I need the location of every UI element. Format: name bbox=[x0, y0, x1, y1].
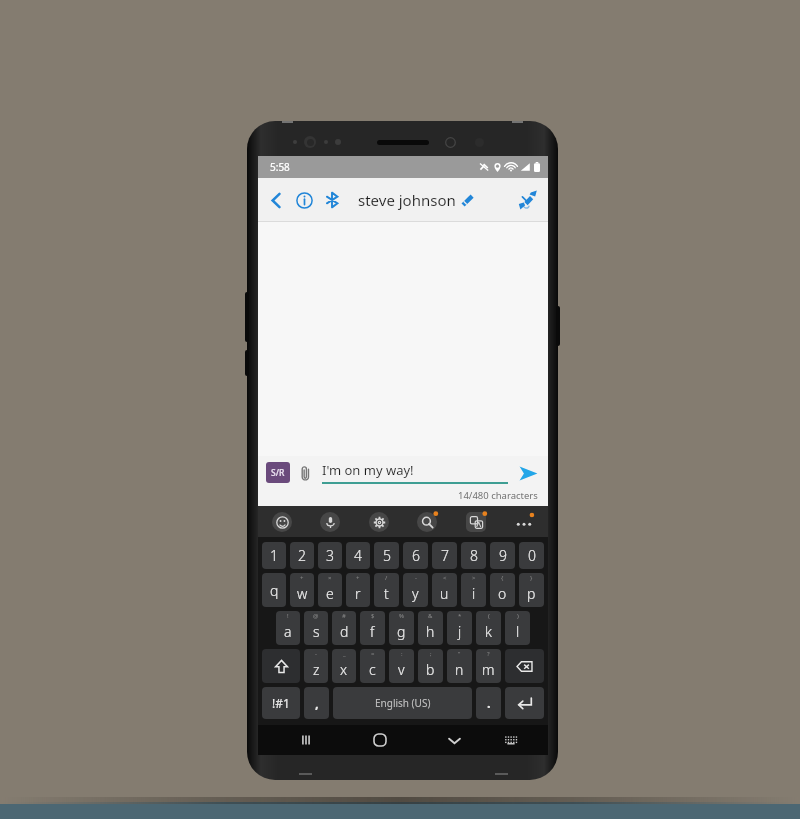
staticText: / bbox=[385, 574, 388, 582]
button[interactable]: Enter bbox=[505, 687, 544, 719]
button[interactable]: < bbox=[432, 573, 457, 607]
staticText: j bbox=[458, 622, 462, 641]
staticText: } bbox=[530, 574, 533, 582]
button[interactable]: × bbox=[318, 573, 342, 607]
button[interactable]: Emoji bbox=[271, 511, 293, 533]
button[interactable]: . bbox=[476, 687, 501, 719]
button[interactable]: ! bbox=[276, 611, 300, 645]
button[interactable]: & bbox=[418, 611, 443, 645]
staticText: * bbox=[458, 612, 462, 620]
staticText: q bbox=[270, 581, 279, 600]
button[interactable]: 1 bbox=[262, 542, 286, 569]
button[interactable]: , bbox=[304, 687, 329, 719]
button[interactable]: % bbox=[389, 611, 414, 645]
button[interactable]: 3 bbox=[318, 542, 342, 569]
button[interactable]: / bbox=[374, 573, 399, 607]
staticText: < bbox=[443, 574, 447, 582]
button[interactable]: ( bbox=[476, 611, 501, 645]
button[interactable]: 6 bbox=[403, 542, 428, 569]
staticText: 6 bbox=[412, 546, 420, 565]
staticText: 8 bbox=[470, 546, 478, 565]
staticText: t bbox=[384, 584, 389, 603]
button[interactable]: Recent apps bbox=[291, 725, 321, 755]
staticText: 2 bbox=[298, 546, 306, 565]
staticText: I'm on my way! bbox=[322, 461, 414, 479]
button[interactable]: Attach file bbox=[295, 463, 315, 483]
button[interactable]: Back bbox=[439, 725, 469, 755]
button[interactable]: Backspace bbox=[505, 649, 544, 683]
button[interactable]: English (US) bbox=[333, 687, 472, 719]
button[interactable]: 7 bbox=[432, 542, 457, 569]
staticText: + bbox=[300, 574, 304, 582]
button[interactable]: : bbox=[389, 649, 414, 683]
button[interactable]: Search bbox=[416, 511, 438, 533]
button[interactable]: 0 bbox=[519, 542, 544, 569]
button[interactable]: " bbox=[447, 649, 472, 683]
button[interactable]: Home bbox=[365, 725, 395, 755]
staticText: w bbox=[297, 584, 308, 603]
button[interactable]: ? bbox=[476, 649, 501, 683]
button[interactable]: Bluetooth bbox=[319, 187, 345, 213]
button[interactable]: !#1 bbox=[262, 687, 300, 719]
button[interactable]: { bbox=[490, 573, 515, 607]
staticText: × bbox=[328, 574, 332, 582]
staticText: o bbox=[498, 584, 507, 603]
button[interactable]: q bbox=[262, 573, 286, 607]
button[interactable]: 9 bbox=[490, 542, 515, 569]
staticText: r bbox=[355, 584, 361, 603]
button[interactable]: @ bbox=[304, 611, 328, 645]
staticText: ) bbox=[517, 612, 519, 620]
button[interactable]: _ bbox=[332, 649, 356, 683]
staticText: 3 bbox=[326, 546, 334, 565]
staticText: { bbox=[501, 574, 504, 582]
button[interactable]: Contact info bbox=[291, 187, 317, 213]
staticText: i bbox=[472, 584, 476, 603]
button[interactable]: S/R bbox=[266, 462, 290, 483]
staticText: x bbox=[340, 660, 348, 679]
staticText: k bbox=[485, 622, 492, 641]
button[interactable]: Translate bbox=[465, 511, 487, 533]
button[interactable]: Back bbox=[263, 187, 289, 213]
button[interactable]: Shift bbox=[262, 649, 300, 683]
button[interactable]: } bbox=[519, 573, 544, 607]
button[interactable]: * bbox=[447, 611, 472, 645]
button[interactable]: ; bbox=[418, 649, 443, 683]
button[interactable]: # bbox=[332, 611, 356, 645]
button[interactable]: 4 bbox=[346, 542, 370, 569]
staticText: b bbox=[426, 660, 435, 679]
button[interactable]: Keyboard settings bbox=[368, 511, 390, 533]
button[interactable]: + bbox=[290, 573, 314, 607]
staticText: & bbox=[428, 612, 433, 620]
staticText: % bbox=[399, 612, 404, 620]
staticText: 4 bbox=[354, 546, 362, 565]
button[interactable]: 2 bbox=[290, 542, 314, 569]
staticText: ; bbox=[430, 650, 432, 658]
button[interactable]: steve johnson bbox=[358, 178, 513, 222]
button[interactable]: Satellite messaging bbox=[513, 185, 543, 215]
staticText: m bbox=[482, 660, 495, 679]
staticText: @ bbox=[313, 612, 319, 620]
button[interactable]: $ bbox=[360, 611, 385, 645]
button[interactable]: Hide keyboard bbox=[496, 725, 526, 755]
button[interactable]: - bbox=[304, 649, 328, 683]
staticText: _ bbox=[343, 650, 346, 658]
button[interactable]: ) bbox=[505, 611, 530, 645]
button[interactable]: Voice input bbox=[319, 511, 341, 533]
button[interactable]: = bbox=[360, 649, 385, 683]
staticText: z bbox=[313, 660, 320, 679]
staticText: : bbox=[401, 650, 403, 658]
staticText: 1 bbox=[270, 546, 278, 565]
button[interactable]: - bbox=[403, 573, 428, 607]
button[interactable]: More options bbox=[513, 511, 535, 533]
staticText: ! bbox=[287, 612, 289, 620]
staticText: h bbox=[426, 622, 435, 641]
button[interactable]: + bbox=[346, 573, 370, 607]
staticText: steve johnson bbox=[358, 190, 456, 210]
button[interactable]: Send bbox=[515, 460, 541, 486]
staticText: a bbox=[284, 622, 292, 641]
button[interactable]: > bbox=[461, 573, 486, 607]
staticText: f bbox=[370, 622, 375, 641]
button[interactable]: 8 bbox=[461, 542, 486, 569]
button[interactable]: 5 bbox=[374, 542, 399, 569]
staticText: p bbox=[527, 584, 536, 603]
